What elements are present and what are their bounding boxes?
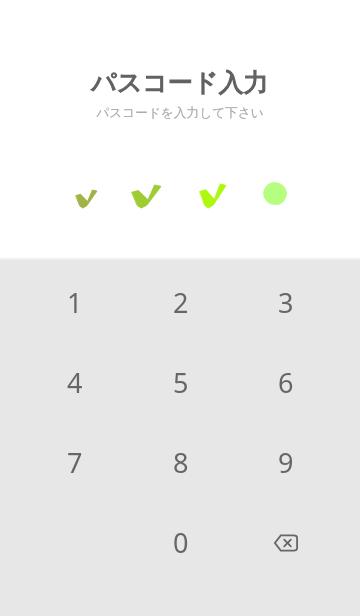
button[interactable]: 9 xyxy=(233,422,338,502)
button[interactable]: 3 xyxy=(233,262,338,342)
button[interactable]: 2 xyxy=(128,262,233,342)
staticText: 4 xyxy=(67,364,83,401)
button[interactable]: 4 xyxy=(22,342,128,422)
button[interactable]: 7 xyxy=(22,422,128,502)
staticText: 3 xyxy=(278,284,294,321)
staticText: パスコードを入力して下さい xyxy=(96,105,264,121)
staticText: 2 xyxy=(173,284,189,321)
button[interactable]: 0 xyxy=(128,502,233,582)
staticText: 1 xyxy=(67,284,83,321)
button[interactable]: 8 xyxy=(128,422,233,502)
button[interactable]: 1 xyxy=(22,262,128,342)
staticText: 0 xyxy=(173,524,189,561)
button[interactable]: Delete xyxy=(233,502,338,582)
button[interactable]: 6 xyxy=(233,342,338,422)
staticText: 6 xyxy=(278,364,294,401)
staticText: 8 xyxy=(173,444,189,481)
button[interactable]: 5 xyxy=(128,342,233,422)
staticText: パスコード入力 xyxy=(91,67,269,98)
staticText: 9 xyxy=(278,444,294,481)
staticText: 5 xyxy=(173,364,189,401)
staticText: パスコード入力 xyxy=(91,67,269,98)
staticText: 7 xyxy=(67,444,83,481)
